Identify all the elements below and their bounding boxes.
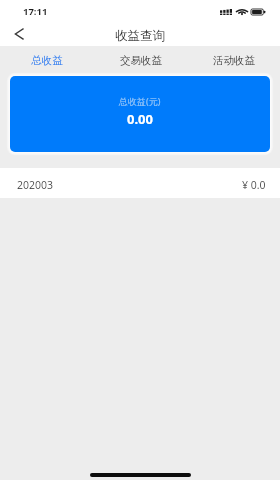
button[interactable]: 交易收益 [94, 46, 187, 76]
staticText: 交易收益 [120, 54, 162, 67]
button[interactable]: Back [0, 22, 34, 46]
staticText: 17:11 [23, 5, 48, 18]
staticText: 202003 [17, 178, 54, 192]
button[interactable]: 总收益(元) [10, 76, 270, 152]
staticText: 总收益 [31, 54, 63, 67]
staticText: 活动收益 [213, 54, 255, 67]
staticText: ¥ 0.0 [242, 178, 266, 192]
staticText: 收益查询 [115, 28, 165, 44]
staticText: 0.00 [127, 110, 153, 128]
staticText: 总收益(元) [119, 95, 161, 107]
button[interactable]: 202003 [0, 168, 280, 198]
button[interactable]: 活动收益 [187, 46, 280, 76]
button[interactable]: 总收益 [0, 46, 94, 76]
